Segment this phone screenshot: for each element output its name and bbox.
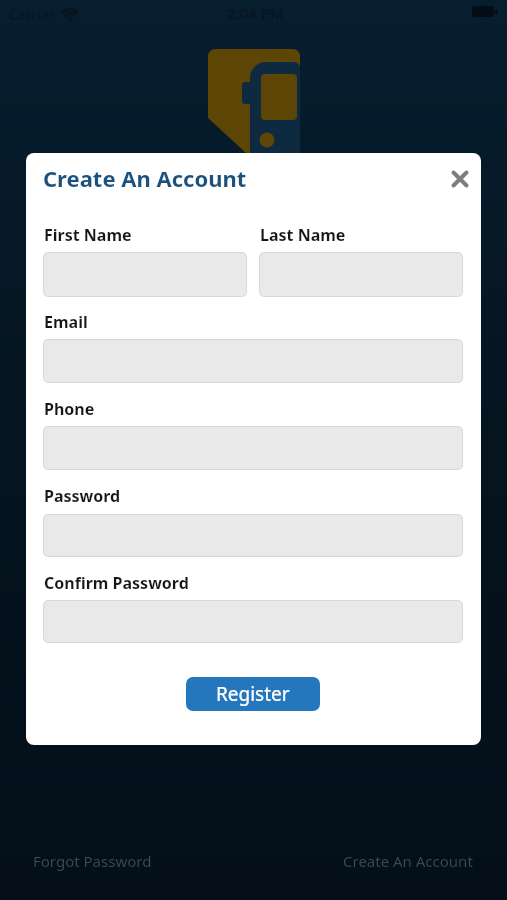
staticText: First Name bbox=[44, 224, 132, 246]
button[interactable] bbox=[449, 168, 471, 190]
staticText: Carrier bbox=[9, 5, 55, 24]
button[interactable] bbox=[43, 514, 463, 557]
staticText: Confirm Password bbox=[44, 572, 189, 594]
staticText: Forgot Password bbox=[33, 851, 152, 871]
staticText: Register bbox=[216, 681, 290, 707]
staticText: Phone bbox=[44, 398, 95, 420]
staticText: Create An Account bbox=[43, 163, 247, 193]
button[interactable] bbox=[43, 339, 463, 383]
button[interactable]: Register bbox=[186, 677, 320, 711]
button[interactable] bbox=[43, 426, 463, 470]
button[interactable] bbox=[259, 252, 463, 297]
staticText: Password bbox=[44, 485, 121, 507]
staticText: 2:08 PM bbox=[227, 3, 284, 23]
button[interactable]: Create An Account bbox=[335, 845, 465, 865]
staticText: Email bbox=[44, 311, 88, 333]
button[interactable]: Forgot Password bbox=[25, 845, 144, 865]
staticText: Create An Account bbox=[343, 851, 473, 871]
staticText: Last Name bbox=[260, 224, 346, 246]
button[interactable] bbox=[43, 600, 463, 643]
button[interactable] bbox=[43, 252, 247, 297]
